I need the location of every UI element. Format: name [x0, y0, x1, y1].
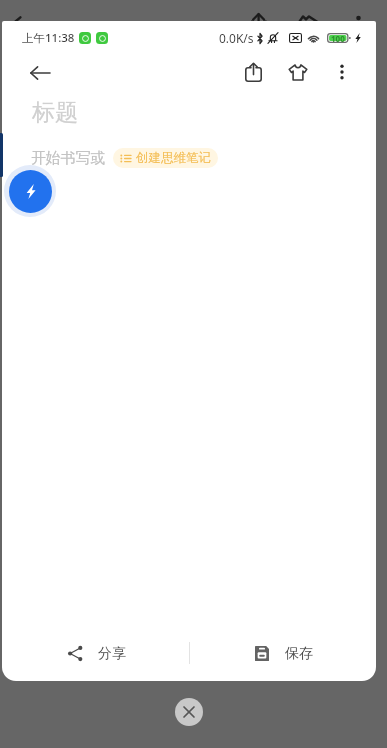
staticText: 分享 [98, 645, 126, 663]
staticText: 开始书写或 [31, 149, 105, 168]
staticText: 0.0K/s [219, 30, 254, 46]
staticText: 保存 [285, 645, 313, 663]
button[interactable]: Quick actions [4, 165, 56, 217]
button[interactable]: Share [237, 56, 269, 88]
button[interactable]: 分享 [2, 625, 189, 681]
button[interactable]: 保存 [189, 625, 376, 681]
staticText: 标题 [32, 98, 78, 127]
staticText: 100 [331, 33, 345, 43]
staticText: 创建思维笔记 [136, 150, 211, 166]
button[interactable]: Theme [282, 56, 314, 88]
button[interactable]: Back [22, 57, 58, 89]
button[interactable]: More options [326, 56, 358, 88]
staticText: 上午11:38 [22, 30, 75, 46]
button[interactable]: Close [175, 698, 203, 726]
button[interactable]: 创建思维笔记 [113, 148, 218, 168]
